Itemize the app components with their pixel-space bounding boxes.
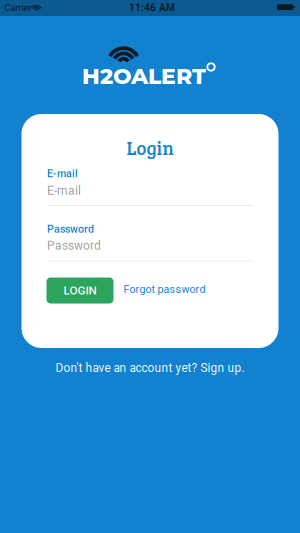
staticText: E-mail (47, 184, 81, 198)
staticText: E-mail (47, 167, 78, 180)
staticText: Carrier (4, 2, 31, 13)
staticText: Login (126, 135, 173, 160)
button[interactable]: Don't have an account yet? Sign up. (0, 361, 300, 375)
staticText: Password (47, 223, 94, 235)
staticText: Password (47, 238, 101, 253)
button[interactable]: Forgot password (123, 283, 205, 296)
button[interactable]: LOGIN (46, 277, 113, 303)
staticText: Forgot password (123, 283, 205, 296)
staticText: Don't have an account yet? Sign up. (55, 361, 244, 375)
button[interactable]: Password (47, 223, 253, 261)
staticText: LOGIN (63, 284, 96, 297)
button[interactable]: E-mail (47, 167, 253, 206)
staticText: 11:46 AM (129, 2, 175, 14)
staticText: H2OALERT (82, 63, 206, 89)
